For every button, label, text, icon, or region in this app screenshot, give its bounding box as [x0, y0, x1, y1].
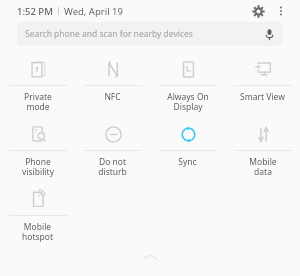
button[interactable]: Sync [150, 117, 225, 168]
staticText: Smart View [240, 91, 285, 103]
button[interactable]: Mobile data [225, 117, 300, 178]
staticText: Phone visibility [22, 156, 54, 178]
staticText: Do not disturb [98, 156, 127, 178]
button[interactable]: Mobile hotspot [0, 182, 75, 243]
button[interactable]: Phone visibility [0, 117, 75, 178]
staticText: 1:52 PM [17, 5, 53, 18]
button[interactable]: Search phone and scan for nearby devices [17, 22, 283, 46]
staticText: NFC [104, 91, 121, 103]
staticText: Wed, April 19 [64, 5, 123, 18]
staticText: Mobile hotspot [22, 221, 53, 243]
button[interactable]: Smart View [225, 52, 300, 103]
staticText: Search phone and scan for nearby devices [25, 28, 193, 40]
other: Voice search [262, 27, 276, 41]
button[interactable]: NFC [75, 52, 150, 103]
button[interactable]: Always On Display [150, 52, 225, 113]
staticText: Private mode [24, 91, 52, 113]
button[interactable]: Private mode [0, 52, 75, 113]
staticText: Sync [178, 156, 197, 168]
button[interactable]: Do not disturb [75, 117, 150, 178]
staticText: Always On Display [167, 91, 209, 113]
staticText: Mobile data [249, 156, 277, 178]
button[interactable]: More options [270, 0, 292, 22]
button[interactable]: Settings [246, 0, 270, 22]
